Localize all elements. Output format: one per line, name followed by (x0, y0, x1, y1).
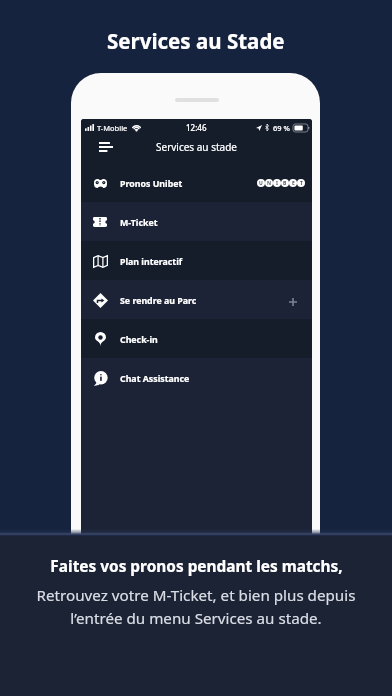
staticText: Check-in (120, 334, 158, 346)
button[interactable]: Open navigation menu (81, 136, 118, 163)
staticText: E (292, 180, 295, 187)
staticText: T (300, 180, 303, 187)
staticText: Services au Stade (107, 27, 285, 55)
staticText: Chat Assistance (120, 373, 190, 385)
staticText: Retrouvez votre M-Ticket, et bien plus d… (16, 585, 376, 629)
staticText: 12:46 (186, 122, 207, 133)
staticText: B (283, 180, 287, 187)
button[interactable]: Pronos Unibet (81, 163, 312, 202)
staticText: T-Mobile (97, 123, 128, 133)
button[interactable]: Chat Assistance (81, 358, 312, 397)
staticText: I (276, 180, 278, 187)
staticText: Pronos Unibet (120, 178, 183, 190)
staticText: U (259, 180, 263, 187)
button[interactable]: Check-in (81, 319, 312, 358)
button[interactable]: Se rendre au Parc (81, 280, 312, 319)
staticText: M-Ticket (120, 217, 158, 229)
staticText: Plan interactif (120, 256, 183, 268)
staticText: Services au stade (156, 140, 237, 154)
button[interactable]: Plan interactif (81, 241, 312, 280)
button[interactable]: M-Ticket (81, 202, 312, 241)
staticText: Faites vos pronos pendant les matchs, (50, 556, 343, 577)
staticText: Se rendre au Parc (120, 295, 197, 307)
staticText: N (267, 180, 272, 187)
staticText: 69 % (273, 123, 290, 133)
